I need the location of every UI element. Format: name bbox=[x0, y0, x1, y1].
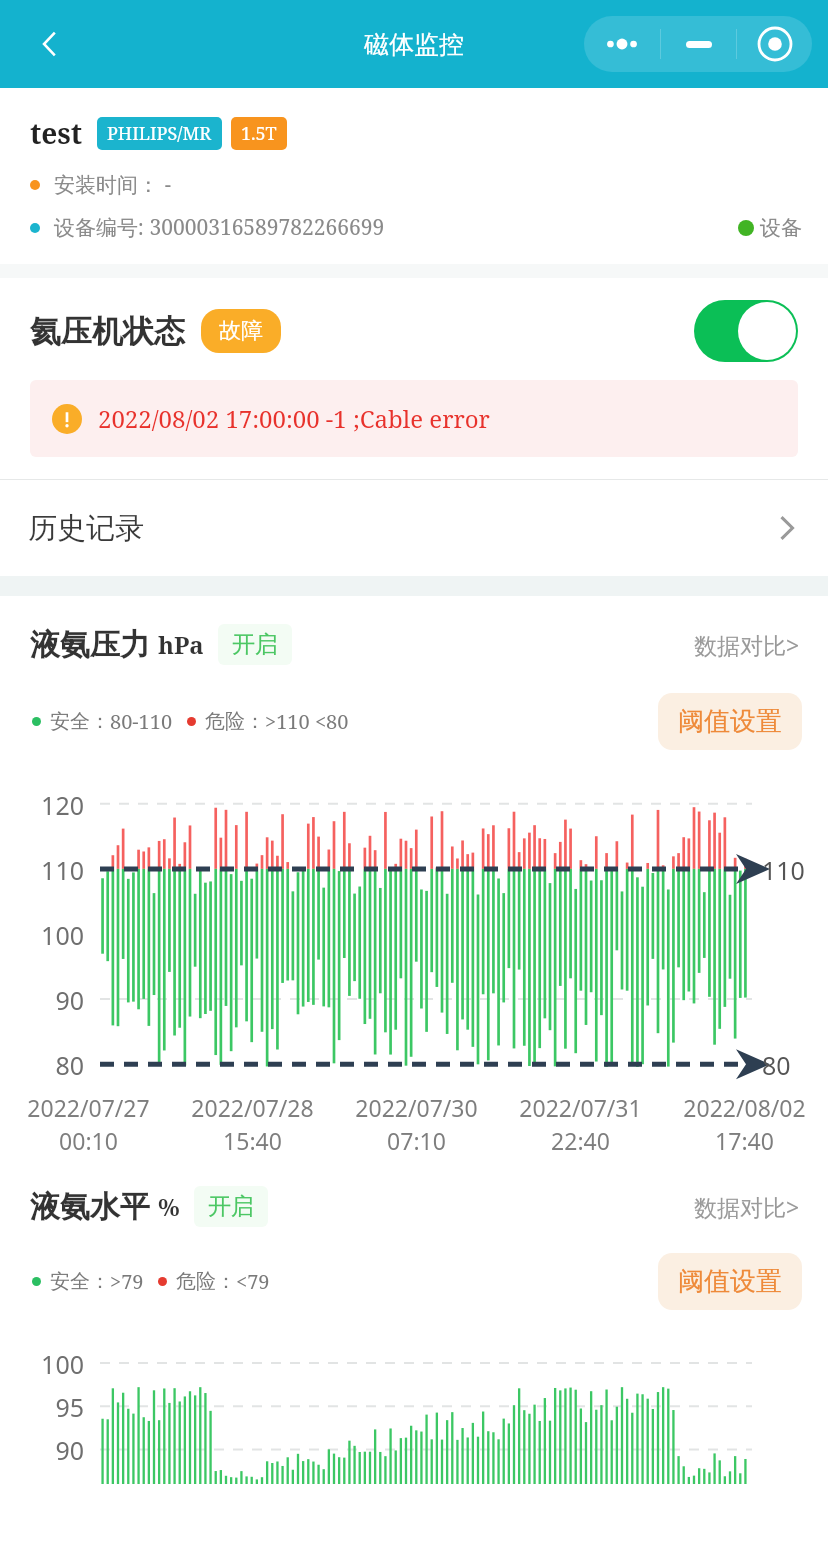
staticText: 120 bbox=[41, 788, 84, 822]
staticText: PHILIPS/MR bbox=[107, 121, 212, 146]
staticText: 100 bbox=[41, 1347, 84, 1381]
staticText: 安全： bbox=[50, 1269, 110, 1294]
button[interactable]: 开启 bbox=[218, 624, 292, 665]
staticText: 1.5T bbox=[241, 121, 277, 146]
staticText: 危险： bbox=[176, 1269, 236, 1294]
staticText: 阈值设置 bbox=[678, 1265, 782, 1298]
button[interactable]: 阈值设置 bbox=[658, 1253, 802, 1310]
staticText: 00:10 bbox=[59, 1125, 118, 1156]
staticText: 氦压机状态 bbox=[30, 312, 185, 351]
staticText: <79 bbox=[236, 1268, 270, 1295]
staticText: 22:40 bbox=[551, 1125, 610, 1156]
staticText: 100 bbox=[41, 918, 84, 952]
staticText: 阈值设置 bbox=[678, 705, 782, 738]
button[interactable]: More options bbox=[584, 16, 660, 72]
staticText: 2022/07/28 bbox=[191, 1092, 314, 1123]
staticText: 历史记录 bbox=[28, 510, 144, 547]
staticText: 数据对比> bbox=[694, 629, 800, 660]
button[interactable]: 数据对比> bbox=[694, 1191, 800, 1222]
staticText: 95 bbox=[55, 1390, 84, 1424]
button[interactable]: Minimize bbox=[661, 16, 736, 72]
staticText: 液氨压力 bbox=[30, 626, 150, 664]
staticText: 安装时间： bbox=[54, 172, 159, 198]
staticText: 15:40 bbox=[223, 1125, 282, 1156]
staticText: >110 <80 bbox=[265, 708, 349, 735]
staticText: 80 bbox=[55, 1048, 84, 1082]
staticText: 110 bbox=[41, 853, 84, 887]
button[interactable]: 2022/08/02 17:00:00 -1 ;Cable error bbox=[30, 380, 798, 457]
staticText: 80-110 bbox=[110, 708, 173, 735]
staticText: 数据对比> bbox=[694, 1191, 800, 1222]
staticText: 2022/07/30 bbox=[355, 1092, 478, 1123]
button[interactable]: 数据对比> bbox=[694, 629, 800, 660]
staticText: 80 bbox=[762, 1048, 791, 1082]
staticText: 开启 bbox=[232, 630, 278, 659]
staticText: 07:10 bbox=[387, 1125, 446, 1156]
button[interactable]: Close mini program bbox=[737, 16, 812, 72]
staticText: 设备编号: bbox=[54, 213, 144, 242]
staticText: 2022/07/31 bbox=[519, 1092, 642, 1123]
staticText: 2022/08/02 17:00:00 -1 ;Cable error bbox=[98, 402, 490, 435]
staticText: >79 bbox=[110, 1268, 144, 1295]
staticText: 开启 bbox=[208, 1192, 254, 1221]
button[interactable]: 开启 bbox=[194, 1186, 268, 1227]
staticText: test bbox=[30, 114, 83, 152]
button[interactable]: 阈值设置 bbox=[658, 693, 802, 750]
button[interactable]: Compressor power toggle bbox=[694, 300, 798, 362]
staticText: 故障 bbox=[219, 317, 263, 345]
staticText: 90 bbox=[55, 1433, 84, 1467]
staticText: 2022/08/02 bbox=[683, 1092, 806, 1123]
staticText: hPa bbox=[158, 628, 204, 661]
staticText: 90 bbox=[55, 983, 84, 1017]
staticText: 2022/07/27 bbox=[27, 1092, 150, 1123]
staticText: 液氨水平 bbox=[30, 1188, 150, 1226]
button[interactable]: 故障 bbox=[201, 309, 281, 353]
staticText: % bbox=[158, 1190, 180, 1223]
staticText: 磁体监控 bbox=[364, 29, 464, 60]
staticText: 设备 bbox=[760, 215, 802, 241]
button[interactable]: Back bbox=[22, 16, 78, 72]
staticText: - bbox=[159, 170, 172, 199]
staticText: 安全： bbox=[50, 709, 110, 734]
staticText: 30000316589782266699 bbox=[144, 213, 385, 242]
button[interactable]: 历史记录 bbox=[0, 480, 828, 576]
staticText: 17:40 bbox=[715, 1125, 774, 1156]
staticText: 危险： bbox=[205, 709, 265, 734]
staticText: 110 bbox=[762, 853, 805, 887]
